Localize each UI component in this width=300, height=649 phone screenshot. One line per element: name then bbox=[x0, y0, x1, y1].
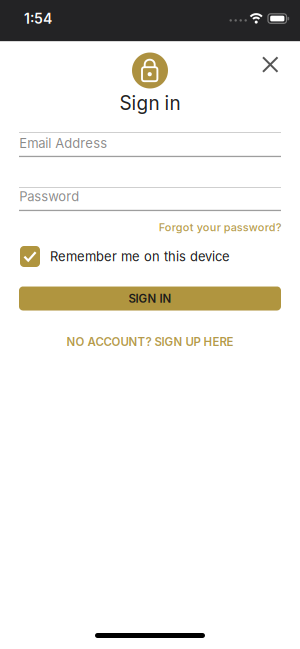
staticText: Remember me on this device bbox=[50, 249, 230, 264]
staticText: SIGN IN bbox=[128, 292, 171, 305]
staticText: 1:54 bbox=[24, 10, 52, 27]
button[interactable]: SIGN IN bbox=[19, 286, 281, 310]
staticText: Forgot your password? bbox=[159, 221, 282, 234]
button[interactable]: Remember me on this device bbox=[20, 246, 230, 267]
staticText: NO ACCOUNT? SIGN UP HERE bbox=[66, 335, 233, 349]
staticText: Password bbox=[19, 189, 79, 204]
staticText: Sign in bbox=[119, 92, 180, 114]
staticText: Email Address bbox=[19, 135, 107, 151]
button[interactable]: Close bbox=[258, 52, 282, 77]
button[interactable]: Forgot your password? bbox=[159, 221, 282, 234]
button[interactable]: NO ACCOUNT? SIGN UP HERE bbox=[66, 335, 233, 349]
